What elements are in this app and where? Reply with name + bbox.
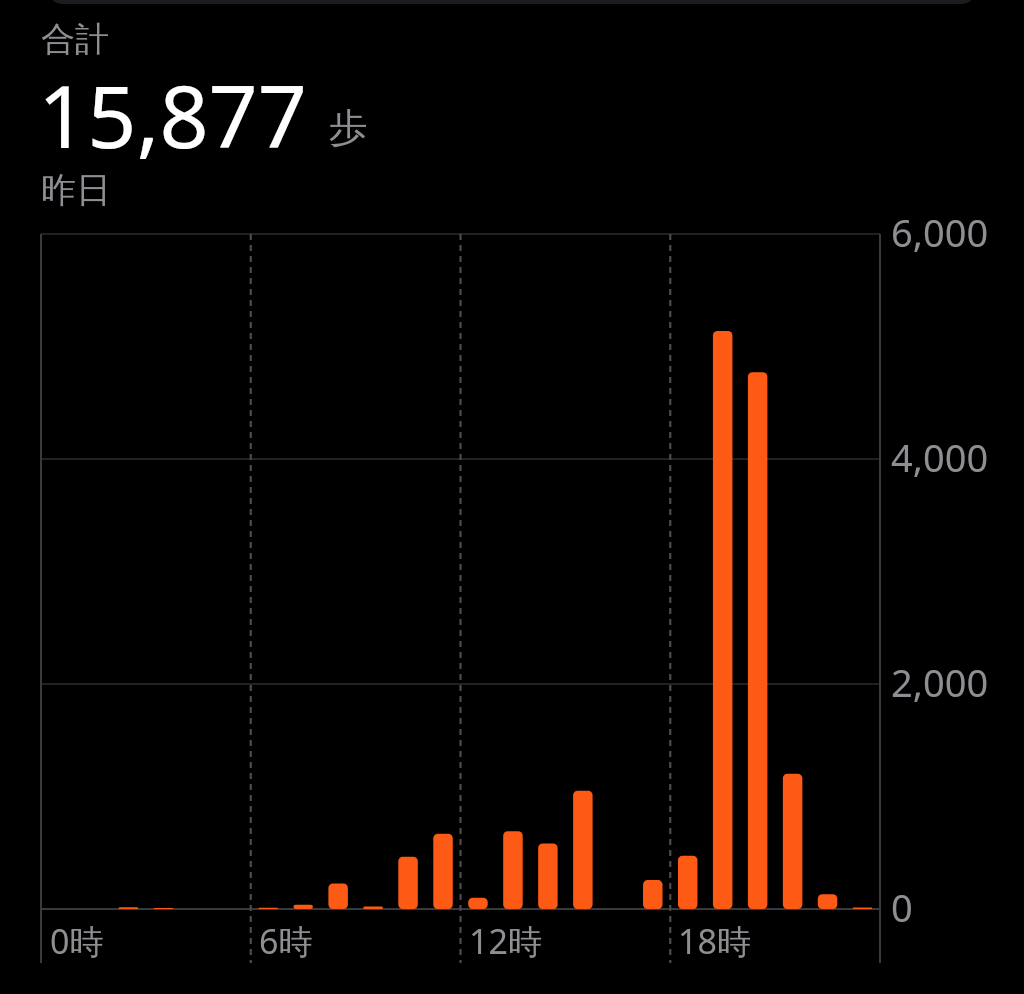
- staticText: 6,000: [891, 206, 989, 258]
- button[interactable]: Hourly step chart for yesterday: [20, 222, 1004, 982]
- button[interactable]: 合計: [0, 6, 1024, 222]
- staticText: 12時: [469, 918, 542, 964]
- staticText: 18時: [678, 918, 751, 964]
- staticText: 2,000: [891, 656, 989, 708]
- staticText: 6時: [259, 918, 313, 964]
- staticText: 0: [891, 881, 913, 933]
- staticText: 昨日: [41, 168, 111, 212]
- staticText: 4,000: [891, 431, 989, 483]
- staticText: 歩: [329, 103, 368, 152]
- staticText: 合計: [41, 18, 109, 61]
- staticText: 0時: [50, 918, 104, 964]
- staticText: 15,877: [38, 56, 308, 173]
